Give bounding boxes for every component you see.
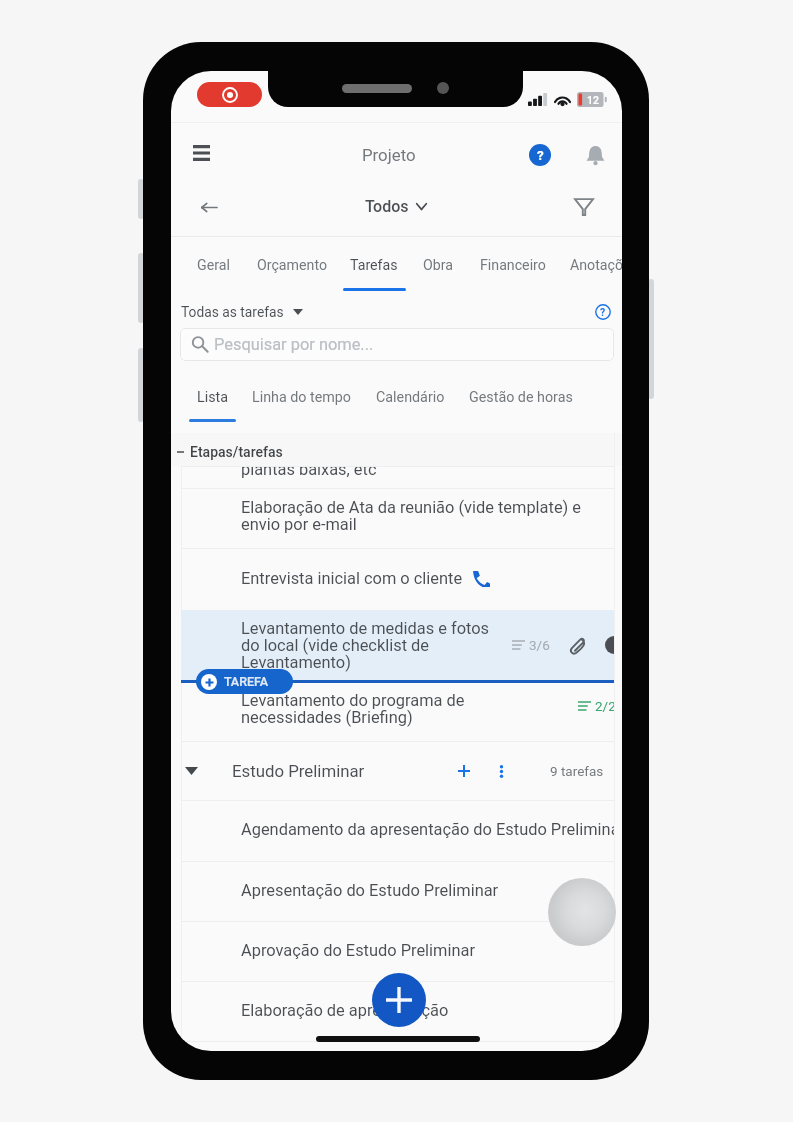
- staticText: Aprovação do Estudo Preliminar: [241, 941, 475, 960]
- button[interactable]: plantas baixas, etc: [181, 467, 614, 487]
- button[interactable]: Agendamento da apresentação do Estudo Pr…: [181, 800, 614, 861]
- button[interactable]: Adicionar tarefa: [452, 759, 476, 783]
- staticText: Anotaçõ: [570, 257, 622, 274]
- button[interactable]: Apresentação do Estudo Preliminar: [181, 861, 614, 921]
- staticText: 3/6: [529, 637, 550, 653]
- staticText: Entrevista inicial com o cliente: [241, 569, 463, 588]
- staticText: Geral: [197, 257, 230, 274]
- staticText: Levantamento de medidas e fotos do local…: [241, 619, 490, 672]
- staticText: Financeiro: [480, 257, 546, 274]
- button[interactable]: Orçamento: [244, 241, 340, 289]
- button[interactable]: Lista: [184, 376, 242, 418]
- button[interactable]: Menu: [182, 131, 221, 175]
- button[interactable]: Obra: [410, 241, 466, 289]
- button[interactable]: Linha do tempo: [239, 376, 365, 418]
- button[interactable]: Tarefas: [337, 241, 411, 289]
- button[interactable]: Aprovação do Estudo Preliminar: [181, 921, 614, 981]
- staticText: Levantamento do programa de necessidades…: [241, 691, 465, 727]
- button[interactable]: Calendário: [363, 376, 458, 418]
- staticText: Pesquisar por nome...: [214, 335, 374, 354]
- button[interactable]: Financeiro: [467, 241, 559, 289]
- staticText: Todos: [365, 197, 409, 216]
- button[interactable]: Mais opcoes: [489, 759, 513, 783]
- button[interactable]: Filtrar: [564, 188, 603, 226]
- button[interactable]: Anotaçõ: [557, 241, 622, 289]
- staticText: Etapas/tarefas: [190, 444, 283, 460]
- staticText: Elaboração de Ata da reunião (vide templ…: [241, 498, 582, 534]
- button[interactable]: Pesquisar por nome...: [180, 328, 614, 361]
- button[interactable]: Estudo Preliminar: [181, 741, 614, 800]
- staticText: Calendário: [376, 389, 445, 406]
- staticText: Tarefas: [350, 257, 398, 274]
- button[interactable]: Notificacoes: [576, 136, 614, 174]
- staticText: Lista: [197, 389, 229, 406]
- button[interactable]: Adicionar: [372, 973, 426, 1027]
- button[interactable]: Todas as tarefas: [181, 300, 303, 323]
- staticText: Agendamento da apresentação do Estudo Pr…: [241, 820, 614, 839]
- button[interactable]: Levantamento do programa de necessidades…: [181, 683, 614, 742]
- staticText: Orçamento: [257, 257, 327, 274]
- button[interactable]: Gravando: [197, 82, 262, 107]
- staticText: TAREFA: [224, 674, 269, 689]
- staticText: Todas as tarefas: [181, 304, 284, 320]
- button[interactable]: Entrevista inicial com o cliente: [181, 548, 614, 609]
- staticText: Estudo Preliminar: [232, 761, 365, 781]
- button[interactable]: Etapas/tarefas: [177, 442, 283, 462]
- button[interactable]: Ajuda contextual: [588, 297, 617, 326]
- staticText: ?: [537, 147, 544, 163]
- staticText: Linha do tempo: [252, 389, 352, 406]
- staticText: Apresentação do Estudo Preliminar: [241, 881, 499, 900]
- button[interactable]: Gestão de horas: [456, 376, 586, 418]
- button[interactable]: Elaboração de Ata da reunião (vide templ…: [181, 488, 614, 547]
- button[interactable]: Elaboração de apresentação: [181, 981, 614, 1041]
- button[interactable]: Todos: [365, 194, 427, 219]
- staticText: Gestão de horas: [469, 389, 573, 406]
- staticText: Projeto: [362, 145, 416, 165]
- button[interactable]: Geral: [184, 241, 243, 289]
- button[interactable]: Ajuda: [521, 136, 559, 174]
- staticText: plantas baixas, etc: [241, 467, 377, 479]
- staticText: 2/2: [595, 698, 614, 714]
- staticText: Obra: [423, 257, 453, 274]
- staticText: 12: [587, 94, 599, 106]
- staticText: Elaboração de apresentação: [241, 1001, 449, 1020]
- staticText: 9 tarefas: [550, 763, 604, 779]
- button[interactable]: Levantamento de medidas e fotos do local…: [181, 610, 614, 681]
- button[interactable]: Voltar: [190, 188, 228, 227]
- staticText: ?: [600, 306, 606, 318]
- button[interactable]: TAREFA: [196, 669, 293, 694]
